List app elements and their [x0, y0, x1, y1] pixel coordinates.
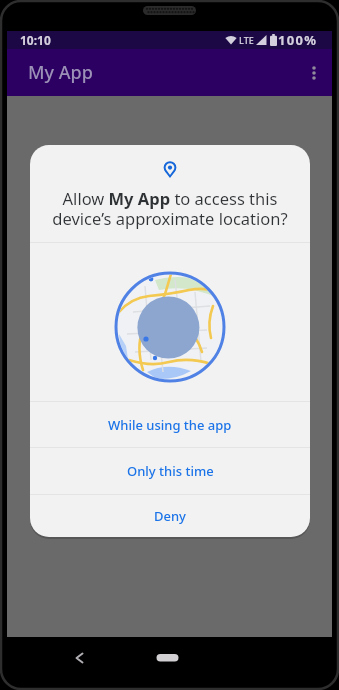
button[interactable] — [302, 61, 326, 85]
button[interactable]: Deny — [30, 495, 310, 537]
button[interactable]: Only this time — [30, 448, 310, 493]
button[interactable]: While using the app — [30, 402, 310, 447]
staticText: My App — [28, 60, 93, 85]
staticText: Allow My App to access this device’s app… — [30, 187, 310, 230]
staticText: Only this time — [127, 462, 214, 480]
staticText: 10:10 — [20, 32, 51, 48]
button[interactable] — [65, 644, 93, 672]
button[interactable] — [153, 644, 181, 672]
staticText: 100% — [278, 31, 318, 49]
staticText: Deny — [154, 507, 186, 525]
staticText: LTE — [239, 34, 254, 46]
staticText: While using the app — [108, 416, 232, 434]
